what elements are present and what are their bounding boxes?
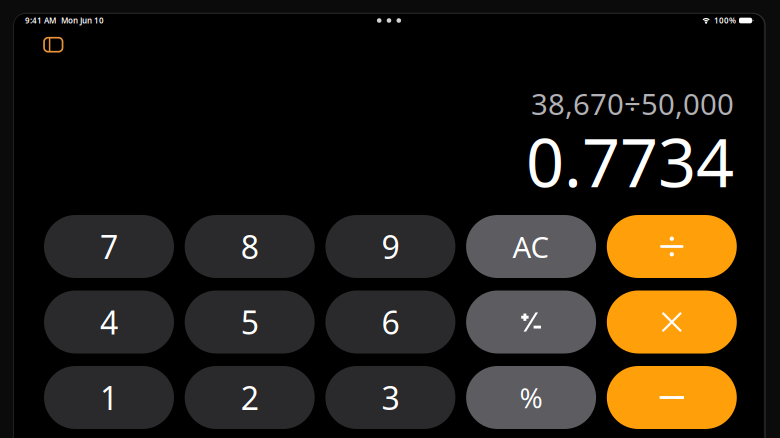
button[interactable]: % [466, 366, 596, 429]
button[interactable]: AC [466, 215, 596, 278]
button[interactable]: 8 [185, 215, 315, 278]
button[interactable]: 5 [185, 290, 315, 353]
staticText: 100% [714, 15, 736, 26]
button[interactable]: Divide [607, 215, 737, 278]
button[interactable]: 1 [44, 366, 174, 429]
staticText: 9 [381, 225, 399, 268]
staticText: 38,670÷50,000 [531, 84, 734, 123]
staticText: 6 [381, 301, 399, 343]
staticText: 9:41 AM [25, 15, 56, 26]
staticText: AC [513, 227, 550, 266]
button[interactable]: 9 [325, 215, 455, 278]
staticText: 0.7734 [526, 117, 734, 206]
staticText: 3 [381, 376, 399, 419]
staticText: 5 [241, 301, 259, 343]
staticText: 8 [241, 225, 259, 268]
button[interactable]: 4 [44, 290, 174, 353]
button[interactable]: Subtract [607, 366, 737, 429]
button[interactable]: 7 [44, 215, 174, 278]
button[interactable]: 3 [325, 366, 455, 429]
staticText: Mon Jun 10 [61, 15, 104, 26]
staticText: 7 [100, 225, 118, 268]
button[interactable]: Multiply [607, 290, 737, 353]
staticText: 4 [100, 301, 118, 343]
button[interactable]: 6 [325, 290, 455, 353]
button[interactable]: 2 [185, 366, 315, 429]
staticText: % [520, 379, 543, 416]
staticText: 2 [241, 376, 259, 419]
staticText: 1 [100, 376, 118, 419]
button[interactable]: Plus Minus [466, 290, 596, 353]
button[interactable]: Show Sidebar [37, 31, 69, 59]
